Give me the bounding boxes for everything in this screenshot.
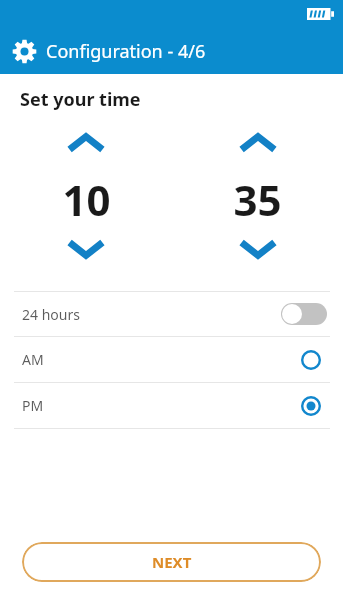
button[interactable]: Decrease hours	[57, 233, 115, 265]
staticText: PM	[22, 396, 44, 415]
staticText: Configuration - 4/6	[46, 39, 206, 64]
button[interactable]: Increase hours	[57, 127, 115, 159]
button[interactable]: NEXT	[22, 542, 321, 582]
staticText: 24 hours	[22, 305, 80, 324]
button[interactable]: Increase minutes	[229, 127, 287, 159]
staticText: NEXT	[152, 552, 192, 572]
button[interactable]: Settings	[12, 39, 37, 64]
staticText: 35	[233, 171, 282, 223]
staticText: 10	[62, 171, 111, 223]
button[interactable]: PM	[0, 383, 343, 428]
button[interactable]: AM	[0, 337, 343, 382]
button[interactable]: Decrease minutes	[229, 233, 287, 265]
staticText: Set your time	[20, 87, 141, 112]
staticText: AM	[22, 350, 44, 369]
button[interactable]: 24 hours	[0, 292, 343, 336]
